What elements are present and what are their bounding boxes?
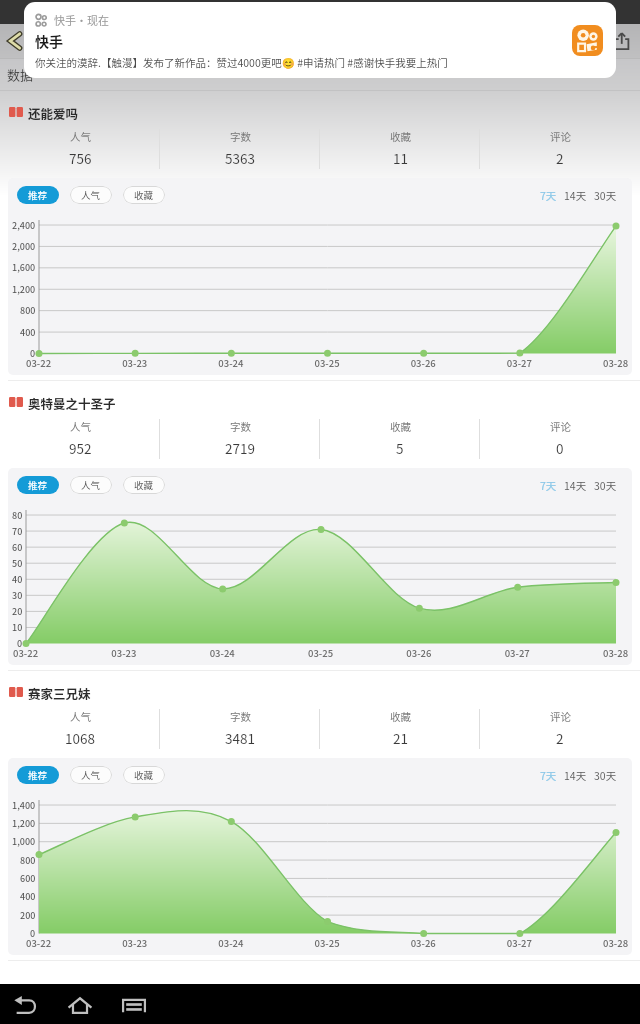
staticText: 推荐 bbox=[28, 768, 48, 782]
staticText: 30天 bbox=[594, 478, 617, 493]
staticText: 7天 bbox=[540, 768, 557, 783]
staticText: 评论 bbox=[550, 129, 571, 144]
staticText: 952 bbox=[69, 438, 92, 458]
staticText: 字数 bbox=[230, 709, 251, 724]
staticText: 人气 bbox=[81, 188, 101, 202]
button[interactable]: 字数 bbox=[160, 415, 320, 463]
staticText: 人气 bbox=[81, 768, 101, 782]
staticText: 30天 bbox=[594, 188, 617, 203]
button[interactable]: 收藏 bbox=[123, 186, 165, 204]
staticText: 推荐 bbox=[28, 188, 48, 202]
staticText: 数据 bbox=[7, 65, 34, 84]
button[interactable]: 30天 bbox=[594, 478, 617, 493]
staticText: 字数 bbox=[230, 419, 251, 434]
staticText: 收藏 bbox=[134, 768, 154, 782]
button[interactable]: 30天 bbox=[594, 768, 617, 783]
staticText: 收藏 bbox=[390, 129, 411, 144]
staticText: 人气 bbox=[70, 129, 91, 144]
staticText: 人气 bbox=[70, 709, 91, 724]
button[interactable]: 人气 bbox=[70, 186, 112, 204]
staticText: 快手 bbox=[35, 31, 63, 51]
staticText: 人气 bbox=[81, 478, 101, 492]
staticText: 21 bbox=[393, 728, 408, 748]
button[interactable]: Back bbox=[4, 984, 48, 1024]
button[interactable]: 7天 bbox=[540, 188, 557, 203]
button[interactable]: 评论 bbox=[480, 705, 640, 753]
staticText: 5363 bbox=[225, 148, 255, 168]
button[interactable]: Home bbox=[58, 984, 102, 1024]
staticText: 收藏 bbox=[390, 419, 411, 434]
button[interactable]: 推荐 bbox=[17, 766, 59, 784]
button[interactable]: 人气 bbox=[70, 476, 112, 494]
button[interactable]: 字数 bbox=[160, 125, 320, 173]
button[interactable]: 收藏 bbox=[320, 125, 480, 173]
staticText: 字数 bbox=[230, 129, 251, 144]
button[interactable]: 7天 bbox=[540, 478, 557, 493]
staticText: 7天 bbox=[540, 188, 557, 203]
staticText: 还能爱吗 bbox=[28, 104, 79, 120]
button[interactable]: 收藏 bbox=[320, 415, 480, 463]
button[interactable]: Share bbox=[606, 24, 640, 58]
button[interactable]: 评论 bbox=[480, 125, 640, 173]
button[interactable]: 人气 bbox=[0, 705, 160, 753]
staticText: 30天 bbox=[594, 768, 617, 783]
staticText: 0 bbox=[556, 438, 564, 458]
button[interactable]: 评论 bbox=[480, 415, 640, 463]
staticText: 14天 bbox=[564, 478, 587, 493]
staticText: 5 bbox=[396, 438, 404, 458]
button[interactable]: 人气 bbox=[0, 125, 160, 173]
staticText: 收藏 bbox=[134, 188, 154, 202]
button[interactable]: 收藏 bbox=[123, 476, 165, 494]
staticText: 收藏 bbox=[134, 478, 154, 492]
button[interactable]: 人气 bbox=[70, 766, 112, 784]
staticText: 11 bbox=[393, 148, 408, 168]
staticText: 人气 bbox=[70, 419, 91, 434]
staticText: 14天 bbox=[564, 188, 587, 203]
staticText: 奥特曼之十圣子 bbox=[28, 394, 116, 410]
staticText: 评论 bbox=[550, 419, 571, 434]
staticText: 评论 bbox=[550, 709, 571, 724]
button[interactable]: Recent apps bbox=[112, 984, 156, 1024]
button[interactable]: Back bbox=[0, 24, 30, 58]
button[interactable]: 7天 bbox=[540, 768, 557, 783]
button[interactable]: 14天 bbox=[564, 478, 587, 493]
button[interactable]: 收藏 bbox=[123, 766, 165, 784]
button[interactable]: 30天 bbox=[594, 188, 617, 203]
staticText: 7天 bbox=[540, 478, 557, 493]
button[interactable]: 人气 bbox=[0, 415, 160, 463]
staticText: 14天 bbox=[564, 768, 587, 783]
staticText: 你关注的漠辞.【触漫】发布了新作品：赞过4000更吧😊 #申请热门 #感谢快手我… bbox=[35, 55, 448, 70]
button[interactable]: 快手·现在 bbox=[24, 2, 616, 78]
staticText: 2 bbox=[556, 728, 564, 748]
button[interactable]: 推荐 bbox=[17, 186, 59, 204]
button[interactable]: 14天 bbox=[564, 188, 587, 203]
staticText: 2 bbox=[556, 148, 564, 168]
button[interactable]: 14天 bbox=[564, 768, 587, 783]
button[interactable]: 字数 bbox=[160, 705, 320, 753]
staticText: 3481 bbox=[225, 728, 255, 748]
staticText: 1068 bbox=[65, 728, 95, 748]
staticText: 快手·现在 bbox=[54, 12, 109, 28]
staticText: 推荐 bbox=[28, 478, 48, 492]
staticText: 赛家三兄妹 bbox=[28, 684, 91, 700]
staticText: 2719 bbox=[225, 438, 255, 458]
staticText: 收藏 bbox=[390, 709, 411, 724]
button[interactable]: 推荐 bbox=[17, 476, 59, 494]
button[interactable]: 收藏 bbox=[320, 705, 480, 753]
staticText: 756 bbox=[69, 148, 92, 168]
